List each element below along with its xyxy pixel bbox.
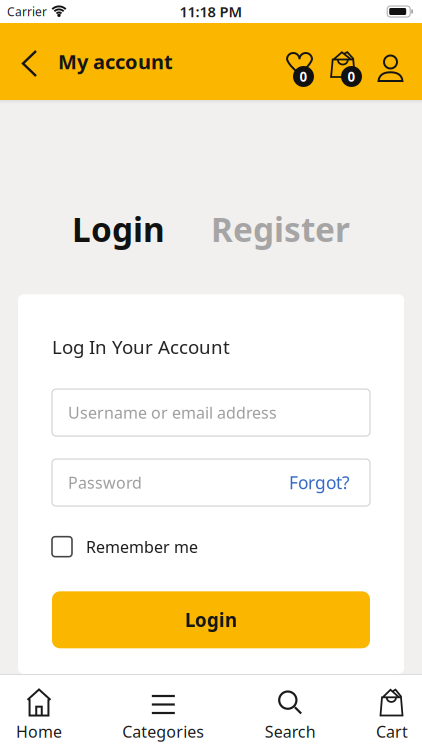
staticText: Categories (122, 721, 204, 742)
button[interactable]: Search (265, 689, 316, 742)
button[interactable]: Shopping bag (330, 44, 362, 79)
staticText: Log In Your Account (52, 334, 230, 359)
button[interactable]: Wishlist (287, 44, 314, 79)
staticText: My account (58, 48, 173, 75)
staticText: Register (211, 207, 350, 251)
staticText: 11:18 PM (179, 2, 242, 21)
staticText: Password (68, 472, 142, 493)
button[interactable]: Home (16, 689, 62, 742)
staticText: Forgot? (289, 471, 350, 494)
staticText: Cart (376, 721, 408, 742)
staticText: Login (72, 207, 165, 251)
button[interactable]: Login (72, 207, 165, 251)
staticText: Remember me (86, 536, 198, 557)
button[interactable]: Remember me (52, 536, 198, 557)
button[interactable]: Register (211, 207, 350, 251)
staticText: Username or email address (68, 402, 277, 423)
staticText: Search (265, 721, 316, 742)
staticText: 0 (347, 68, 355, 85)
staticText: Carrier (7, 3, 47, 19)
button[interactable]: Forgot? (289, 471, 370, 494)
button[interactable]: Account (378, 48, 422, 75)
staticText: 0 (299, 68, 307, 85)
button[interactable]: Back (0, 49, 58, 74)
staticText: Login (185, 607, 237, 632)
staticText: Home (16, 721, 62, 742)
button[interactable]: Categories (122, 689, 204, 742)
button[interactable]: Login (52, 591, 370, 648)
button[interactable]: Cart (376, 689, 408, 742)
